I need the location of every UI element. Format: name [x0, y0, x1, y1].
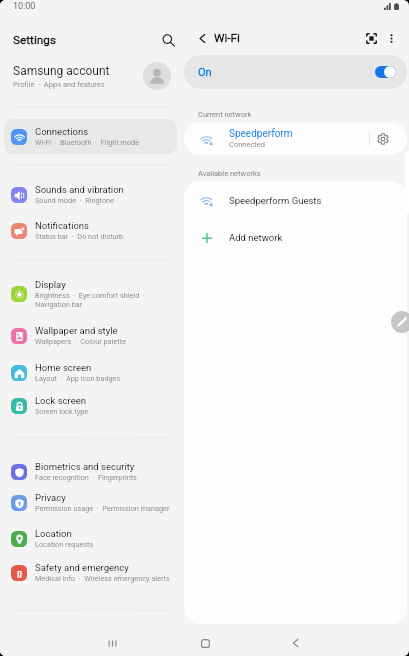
button[interactable]: On: [184, 55, 407, 89]
staticText: Connections: [35, 126, 89, 137]
button[interactable]: More options: [380, 27, 402, 49]
button[interactable]: Safety and emergency: [4, 555, 177, 590]
staticText: Current network: [198, 110, 252, 119]
staticText: Biometrics and security: [35, 461, 135, 472]
button[interactable]: Biometrics and security: [4, 454, 177, 489]
button[interactable]: Notifications: [4, 213, 177, 248]
staticText: Settings: [13, 33, 57, 47]
staticText: Brightness · Eye comfort shield ·: [35, 291, 145, 300]
button[interactable]: Settings: [0, 26, 184, 54]
button[interactable]: Sounds and vibration: [4, 177, 177, 212]
button[interactable]: Display: [4, 274, 177, 314]
button[interactable]: Location: [4, 521, 177, 556]
staticText: Privacy: [35, 492, 66, 503]
button[interactable]: Recents: [95, 630, 129, 656]
staticText: On: [198, 66, 212, 79]
staticText: 10:00: [13, 1, 36, 12]
staticText: Layout · App icon badges: [35, 374, 121, 383]
button[interactable]: Privacy: [4, 485, 177, 520]
button[interactable]: Back: [278, 630, 312, 656]
staticText: Lock screen: [35, 395, 87, 406]
staticText: Status bar · Do not disturb: [35, 232, 124, 241]
staticText: Safety and emergency: [35, 562, 129, 573]
button[interactable]: Search: [155, 27, 181, 53]
staticText: Available networks: [198, 169, 261, 178]
staticText: Face recognition · Fingerprints: [35, 473, 137, 482]
staticText: Screen lock type: [35, 407, 89, 416]
button[interactable]: Speedperform Guests: [184, 181, 407, 219]
staticText: Speedperform Guests: [229, 195, 322, 206]
button[interactable]: Wi-Fi: [214, 26, 240, 50]
button[interactable]: Lock screen: [4, 388, 177, 423]
button[interactable]: Home screen: [4, 355, 177, 390]
button[interactable]: Add network: [184, 219, 407, 256]
staticText: Wi-Fi · Bluetooth · Flight mode: [35, 138, 140, 147]
button[interactable]: Samsung account: [0, 57, 184, 95]
button[interactable]: Connections: [4, 119, 177, 154]
staticText: Add network: [229, 232, 283, 243]
staticText: Medical info · Wireless emergency alerts: [35, 574, 170, 583]
staticText: Home screen: [35, 362, 92, 373]
staticText: Wi-Fi: [214, 31, 240, 45]
staticText: Samsung account: [13, 64, 110, 78]
button[interactable]: Back: [191, 27, 213, 49]
staticText: Wallpapers · Colour palette: [35, 337, 126, 346]
button[interactable]: Scan QR code: [360, 27, 382, 49]
staticText: Sound mode · Ringtone: [35, 196, 114, 205]
staticText: Notifications: [35, 220, 90, 231]
button[interactable]: Home: [188, 630, 222, 656]
staticText: Sounds and vibration: [35, 184, 124, 195]
staticText: Profile · Apps and features: [13, 80, 105, 89]
staticText: Location requests: [35, 540, 94, 549]
button[interactable]: Wallpaper and style: [4, 318, 177, 353]
button[interactable]: Speedperform: [184, 122, 407, 155]
staticText: Display: [35, 279, 66, 290]
button[interactable]: Edit: [391, 311, 409, 333]
staticText: Connected: [229, 140, 266, 149]
staticText: Speedperform: [229, 128, 293, 140]
staticText: Navigation bar: [35, 300, 83, 309]
staticText: Wallpaper and style: [35, 325, 118, 336]
staticText: Location: [35, 528, 72, 539]
button[interactable]: Network settings: [370, 122, 395, 155]
staticText: Permission usage · Permission manager: [35, 504, 170, 513]
